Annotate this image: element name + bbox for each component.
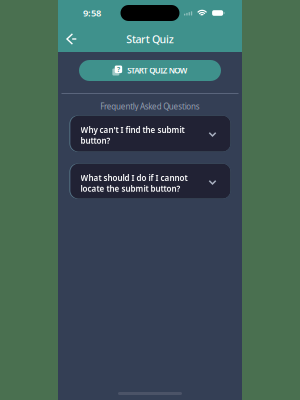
staticText: Why can't I find the submit button? [80,125,184,146]
button[interactable]: Why can't I find the submit button? [69,116,230,152]
staticText: 9:58 [83,7,101,19]
button[interactable]: ? [79,60,221,81]
button[interactable]: Back [60,28,83,50]
staticText: START QUIZ NOW [127,65,188,76]
staticText: ? [117,65,120,74]
staticText: Start Quiz [126,32,174,46]
staticText: Frequently Asked Questions [100,101,200,112]
staticText: What should I do if I cannot locate the … [80,173,187,194]
button[interactable]: What should I do if I cannot locate the … [69,164,230,199]
